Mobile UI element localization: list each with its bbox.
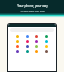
staticText: All the apps you love <box>20 9 45 12</box>
staticText: Your phone, your way <box>17 4 48 8</box>
